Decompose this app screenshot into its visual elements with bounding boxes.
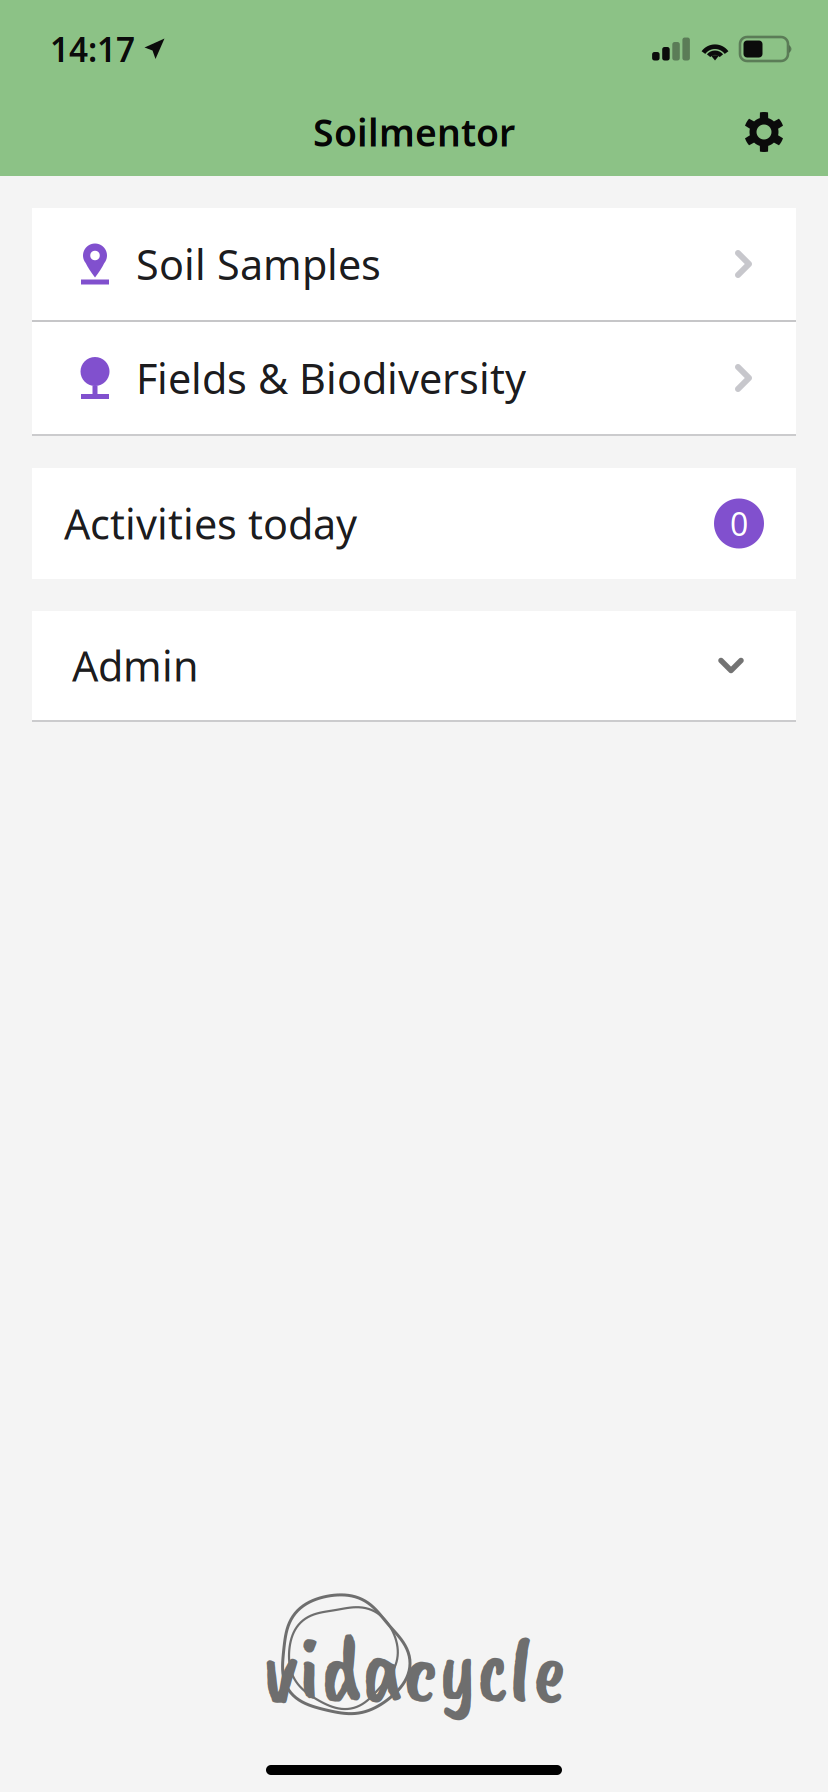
staticText: Fields & Biodiversity <box>136 351 526 405</box>
staticText: Soil Samples <box>136 237 381 291</box>
staticText: 14:17 <box>50 27 135 71</box>
button[interactable]: Soil Samples <box>32 208 796 320</box>
staticText: vidacycle <box>262 1609 565 1727</box>
button[interactable]: Fields & Biodiversity <box>32 322 796 434</box>
button[interactable]: Settings <box>700 88 828 176</box>
staticText: Activities today <box>64 496 357 551</box>
button[interactable]: Admin <box>32 611 796 720</box>
staticText: Admin <box>72 638 199 693</box>
button[interactable]: Activities today <box>32 468 796 579</box>
staticText: Soilmentor <box>313 107 515 157</box>
staticText: 0 <box>730 502 748 545</box>
